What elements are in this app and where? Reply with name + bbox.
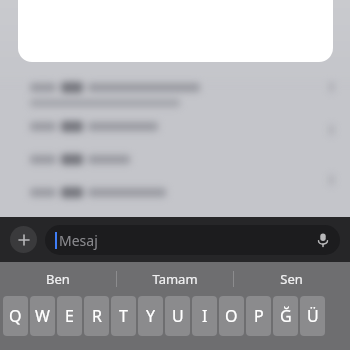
button[interactable]: Add attachment xyxy=(10,226,37,253)
button[interactable]: Mesaj xyxy=(45,225,340,255)
button[interactable]: Voice input xyxy=(314,231,332,249)
staticText: Mesaj xyxy=(59,231,98,250)
staticText: Tamam xyxy=(152,270,198,288)
button[interactable]: Tamam xyxy=(116,262,233,296)
button[interactable]: Q xyxy=(3,296,28,336)
button[interactable]: U xyxy=(165,296,190,336)
staticText: Ben xyxy=(46,270,70,288)
button[interactable]: P xyxy=(246,296,271,336)
button[interactable]: Ü xyxy=(300,296,325,336)
button[interactable]: W xyxy=(30,296,55,336)
button[interactable]: I xyxy=(192,296,217,336)
staticText: W xyxy=(35,305,50,327)
button[interactable]: O xyxy=(219,296,244,336)
staticText: E xyxy=(65,305,74,327)
button[interactable]: Y xyxy=(138,296,163,336)
staticText: T xyxy=(119,305,128,327)
button[interactable]: Ben xyxy=(0,262,116,296)
button[interactable]: Ğ xyxy=(273,296,298,336)
button[interactable]: T xyxy=(111,296,136,336)
staticText: R xyxy=(92,305,102,327)
button[interactable]: E xyxy=(57,296,82,336)
staticText: Y xyxy=(146,305,156,327)
staticText: U xyxy=(172,305,184,327)
staticText: P xyxy=(254,305,264,327)
staticText: O xyxy=(225,305,238,327)
staticText: Ğ xyxy=(280,305,292,327)
button[interactable]: Sen xyxy=(233,262,350,296)
staticText: Ü xyxy=(307,305,319,327)
staticText: Sen xyxy=(280,270,303,288)
button[interactable] xyxy=(18,0,333,62)
button[interactable]: R xyxy=(84,296,109,336)
staticText: I xyxy=(202,305,208,327)
staticText: Q xyxy=(9,305,22,327)
